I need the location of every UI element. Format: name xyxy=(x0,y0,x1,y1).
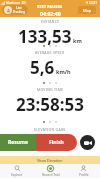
staticText: REST PAUSED xyxy=(37,4,63,9)
button[interactable]: Show Elevation xyxy=(0,156,100,164)
staticText: km xyxy=(73,37,82,44)
staticText: Profile xyxy=(79,173,89,177)
staticText: Explore xyxy=(11,173,23,177)
staticText: Map xyxy=(83,8,92,13)
staticText: Moshaan 3G xyxy=(6,1,26,5)
staticText: AVERAGE SPEED xyxy=(35,50,65,55)
button[interactable]: Camera xyxy=(80,135,95,150)
button[interactable]: Record Trail xyxy=(34,164,67,178)
staticText: DISTANCE xyxy=(41,19,60,24)
staticText: Finish xyxy=(49,139,64,146)
button[interactable]: Live Tracking xyxy=(2,5,28,15)
staticText: 5,6 xyxy=(30,56,55,79)
button[interactable]: Explore xyxy=(0,164,34,178)
staticText: MOVING TIME xyxy=(37,87,64,92)
staticText: 133,53 xyxy=(18,25,72,48)
staticText: Live Tracking xyxy=(13,6,25,14)
button[interactable]: Resume xyxy=(0,134,36,151)
staticText: Record Trail xyxy=(42,173,60,177)
button[interactable]: Map xyxy=(78,6,96,14)
staticText: Resume xyxy=(8,139,28,146)
staticText: 12:31 xyxy=(89,1,98,5)
staticText: Show Elevation xyxy=(37,158,63,163)
button[interactable]: Profile xyxy=(67,164,100,178)
staticText: km/h xyxy=(56,68,71,75)
staticText: ELEVATION GAIN xyxy=(34,127,66,132)
button[interactable]: Finish xyxy=(36,134,77,151)
staticText: 23:58:53 xyxy=(16,93,84,116)
staticText: 04:02:40 xyxy=(40,10,61,17)
